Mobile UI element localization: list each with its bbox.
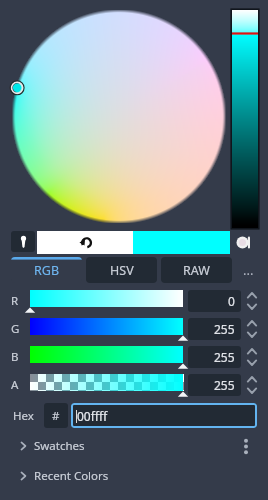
- staticText: 255: [214, 377, 235, 393]
- button[interactable]: 255: [188, 346, 241, 368]
- button[interactable]: R value slider: [30, 290, 183, 312]
- button[interactable]: 255: [188, 318, 241, 340]
- staticText: A: [11, 377, 19, 393]
- button[interactable]: 255: [188, 374, 241, 396]
- staticText: 255: [214, 349, 235, 365]
- button[interactable]: More tabs: [236, 257, 260, 283]
- button[interactable]: B value slider: [30, 346, 183, 368]
- staticText: Recent Colors: [34, 468, 109, 484]
- button[interactable]: 00ffff: [71, 403, 257, 428]
- staticText: R: [11, 293, 19, 309]
- button[interactable]: RAW: [161, 257, 232, 283]
- button[interactable]: Increment or decrement R: [245, 290, 258, 312]
- staticText: ...: [243, 261, 254, 279]
- staticText: 00ffff: [77, 408, 108, 424]
- staticText: 255: [214, 321, 235, 337]
- button[interactable]: 0: [188, 290, 241, 312]
- button[interactable]: Switch picker shape: [238, 231, 258, 253]
- staticText: B: [11, 349, 19, 365]
- button[interactable]: Lightness slider: [231, 9, 259, 229]
- staticText: 0: [228, 293, 235, 309]
- button[interactable]: Recent Colors: [0, 461, 268, 491]
- staticText: #: [52, 408, 60, 424]
- button[interactable]: Pick a color from the screen: [11, 231, 35, 252]
- button[interactable]: Increment or decrement B: [245, 346, 258, 368]
- button[interactable]: Increment or decrement G: [245, 318, 258, 340]
- button[interactable]: Swatches: [0, 431, 268, 461]
- button[interactable]: Color wheel: [12, 10, 225, 223]
- button[interactable]: Increment or decrement A: [245, 374, 258, 396]
- button[interactable]: RGB: [11, 257, 82, 283]
- button[interactable]: Hex format: [44, 403, 68, 428]
- staticText: G: [11, 321, 20, 337]
- button[interactable]: A value slider: [30, 374, 183, 396]
- button[interactable]: Old color and new color: [37, 231, 230, 254]
- button[interactable]: HSV: [86, 257, 157, 283]
- staticText: RAW: [183, 262, 210, 279]
- staticText: Hex: [13, 408, 34, 424]
- staticText: RGB: [34, 262, 60, 279]
- staticText: HSV: [110, 262, 134, 279]
- button[interactable]: Swatch options: [236, 433, 256, 459]
- staticText: Swatches: [34, 438, 85, 454]
- button[interactable]: G value slider: [30, 318, 183, 340]
